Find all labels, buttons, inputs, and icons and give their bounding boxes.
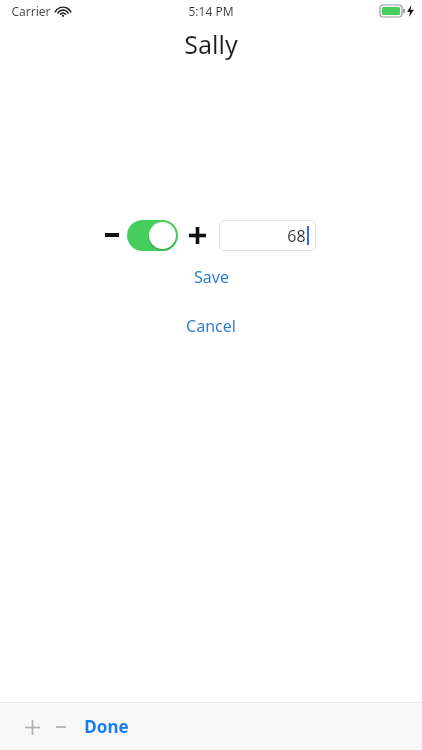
button[interactable]: Add — [18, 713, 46, 741]
button[interactable]: Done — [80, 709, 133, 744]
staticText: Save — [194, 266, 229, 288]
button[interactable]: Save — [176, 261, 247, 293]
button[interactable]: Toggle — [127, 220, 178, 251]
staticText: 68 — [287, 225, 306, 247]
staticText: Done — [84, 715, 129, 738]
staticText: Carrier — [11, 3, 51, 19]
button[interactable]: Value field — [219, 220, 316, 251]
button[interactable]: Increase — [184, 219, 210, 251]
staticText: Cancel — [186, 315, 236, 337]
staticText: 5:14 PM — [188, 3, 234, 19]
button[interactable]: Remove — [47, 713, 75, 741]
staticText: Sally — [184, 27, 238, 61]
button[interactable]: Decrease — [100, 219, 124, 251]
button[interactable]: Cancel — [168, 310, 254, 342]
